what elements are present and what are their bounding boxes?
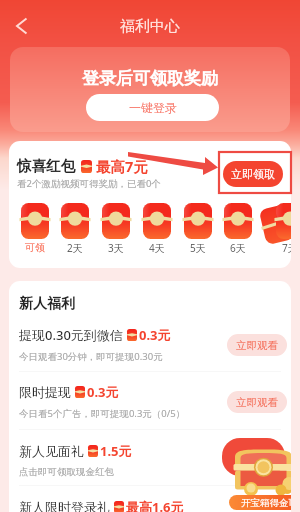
button[interactable]: 一键登录 bbox=[86, 94, 219, 121]
staticText: 今日观看30分钟，即可提现0.30元 bbox=[19, 350, 163, 363]
staticText: 限时提现 bbox=[19, 384, 71, 400]
staticText: 提现0.30元到微信 bbox=[19, 326, 123, 344]
staticText: 0.3元 bbox=[87, 383, 119, 401]
staticText: 一键登录 bbox=[129, 100, 177, 115]
button[interactable]: Back bbox=[6, 11, 36, 41]
staticText: 新人见面礼 bbox=[19, 443, 84, 459]
staticText: 新人福利 bbox=[19, 295, 75, 313]
staticText: 登录后可领取奖励 bbox=[10, 68, 290, 89]
staticText: 3天 bbox=[108, 241, 124, 255]
button[interactable]: 开宝箱得金币 bbox=[219, 433, 291, 512]
staticText: 福利中心 bbox=[0, 17, 300, 36]
staticText: 最高7元 bbox=[96, 156, 148, 176]
staticText: 点击即可领取现金红包 bbox=[19, 466, 114, 478]
staticText: 0.3元 bbox=[139, 326, 171, 344]
staticText: 今日看5个广告，即可提现0.3元（0/5） bbox=[19, 407, 186, 420]
staticText: 6天 bbox=[230, 241, 246, 255]
staticText: 4天 bbox=[149, 241, 165, 255]
button[interactable]: 立即观看 bbox=[227, 391, 287, 413]
button[interactable]: 立即领取 bbox=[223, 161, 283, 187]
button[interactable]: 开宝箱得金币 bbox=[229, 495, 291, 510]
staticText: 最高1.6元 bbox=[126, 498, 184, 512]
staticText: 立即观看 bbox=[236, 396, 278, 409]
staticText: 5天 bbox=[190, 241, 206, 255]
staticText: 看2个激励视频可得奖励，已看0个 bbox=[17, 177, 161, 190]
staticText: 2天 bbox=[67, 241, 83, 255]
staticText: 惊喜红包 bbox=[17, 157, 75, 175]
staticText: 可领 bbox=[25, 241, 45, 254]
staticText: 新人限时登录礼 bbox=[19, 499, 110, 512]
button[interactable]: 立即观看 bbox=[227, 334, 287, 356]
staticText: 1.5元 bbox=[100, 442, 132, 460]
staticText: 立即观看 bbox=[236, 339, 278, 352]
staticText: 7天 bbox=[282, 241, 291, 255]
staticText: 开宝箱得金币 bbox=[241, 497, 291, 509]
staticText: 立即领取 bbox=[231, 167, 275, 181]
